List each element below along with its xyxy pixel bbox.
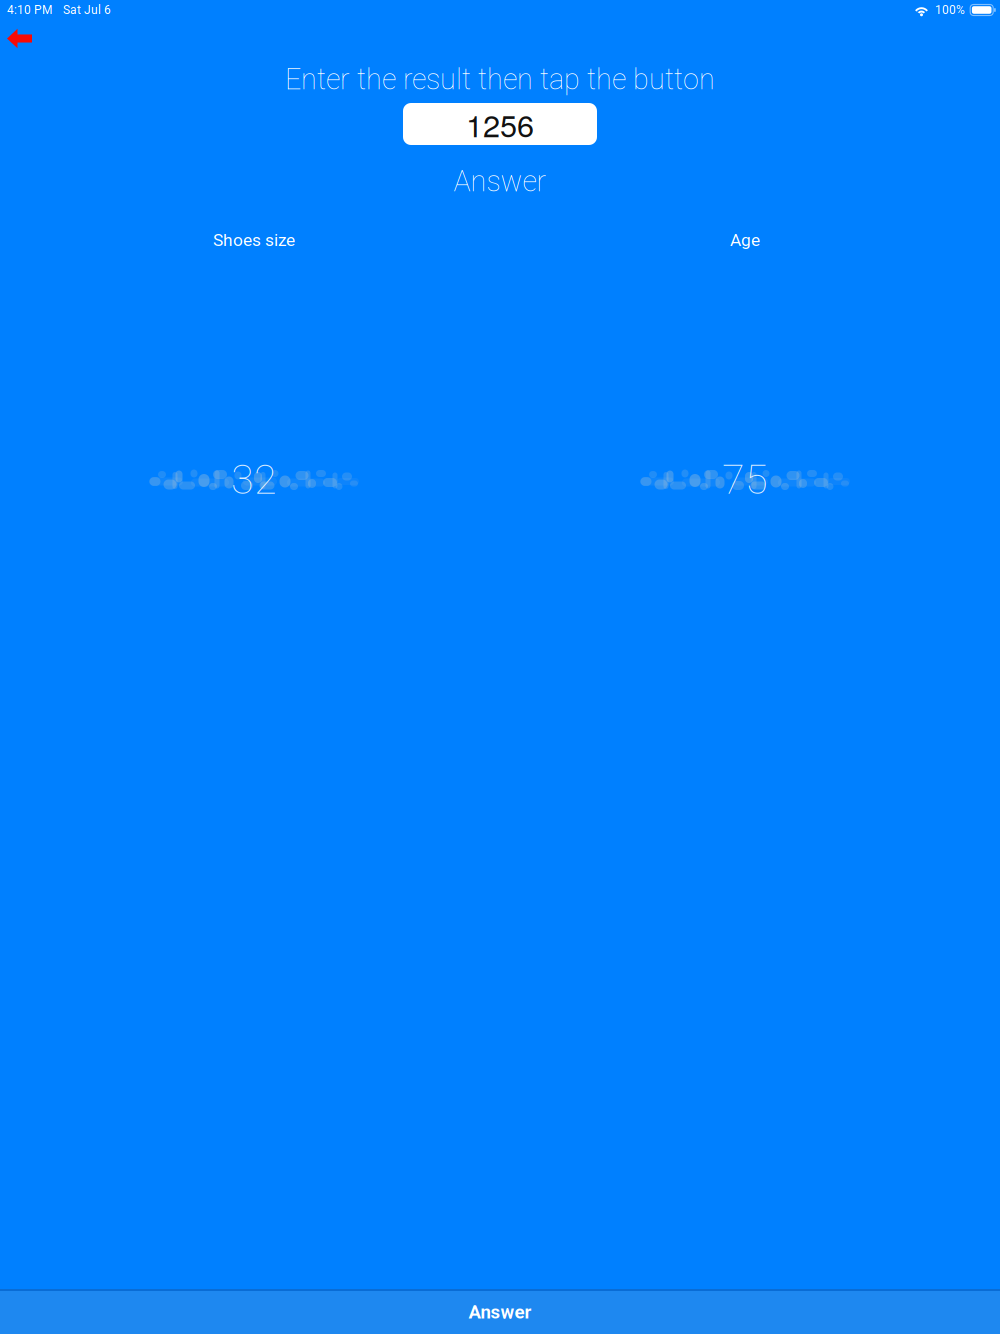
staticText: Shoes size (213, 230, 295, 250)
staticText: Sat Jul 6 (63, 3, 111, 17)
button[interactable]: Answer (0, 1290, 1000, 1334)
staticText: Age (730, 230, 760, 250)
staticText: Enter the result then tap the button (285, 63, 715, 96)
staticText: Answer (468, 1301, 531, 1323)
staticText: 4:10 PM (7, 3, 52, 17)
staticText: Answer (453, 165, 546, 198)
staticText: 1256 (466, 102, 534, 146)
staticText: 75 (722, 455, 768, 504)
staticText: 32 (231, 455, 277, 504)
button[interactable]: Back (0, 19, 41, 58)
staticText: 100% (935, 3, 965, 17)
